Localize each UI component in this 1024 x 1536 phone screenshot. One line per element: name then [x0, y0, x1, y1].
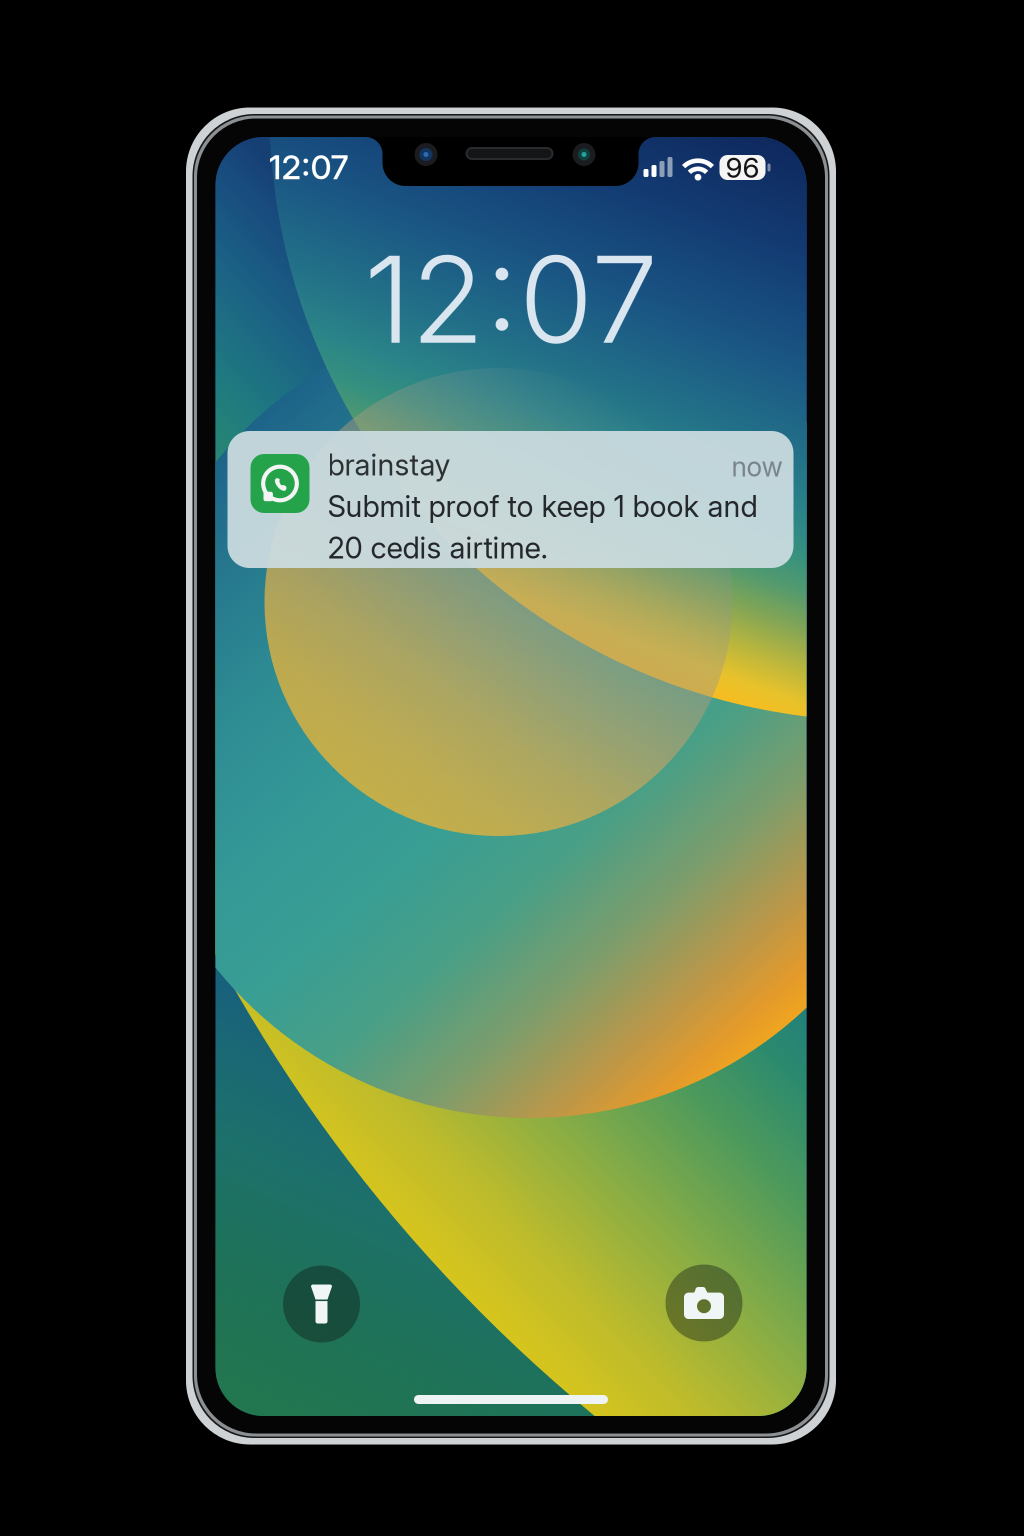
staticText: 12:07: [268, 147, 348, 187]
button[interactable]: Flashlight: [283, 1265, 360, 1342]
staticText: brainstay: [327, 447, 450, 482]
staticText: Submit proof to keep 1 book and: [327, 488, 757, 524]
staticText: now: [731, 451, 782, 483]
staticText: 20 cedis airtime.: [327, 530, 548, 565]
button[interactable]: brainstay: [227, 431, 793, 568]
button[interactable]: Camera: [665, 1264, 742, 1341]
staticText: 96: [725, 151, 759, 184]
staticText: 12:07: [364, 226, 658, 372]
